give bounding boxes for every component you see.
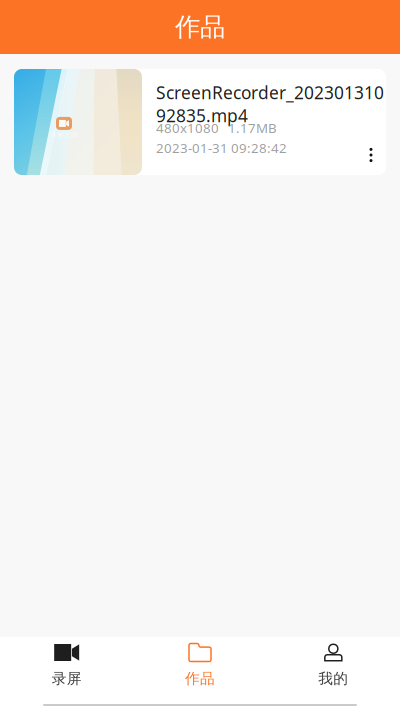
button[interactable]: More options xyxy=(354,138,388,172)
staticText: 我的 xyxy=(318,669,348,687)
button[interactable]: 作品 xyxy=(133,637,267,693)
staticText: ScreenRecorder_20230131092835.mp4 xyxy=(156,81,384,127)
staticText: 作品 xyxy=(185,669,215,687)
staticText: 录屏大师 xyxy=(50,131,78,139)
staticText: 作品 xyxy=(175,11,225,42)
button[interactable]: 录屏 xyxy=(0,637,133,693)
button[interactable]: 我的 xyxy=(267,637,400,693)
staticText: 2023-01-31 09:28:42 xyxy=(156,139,287,157)
staticText: 录屏 xyxy=(52,669,82,687)
staticText: 480x1080 1.17MB xyxy=(156,119,277,137)
button[interactable]: 录屏大师 xyxy=(14,69,386,175)
